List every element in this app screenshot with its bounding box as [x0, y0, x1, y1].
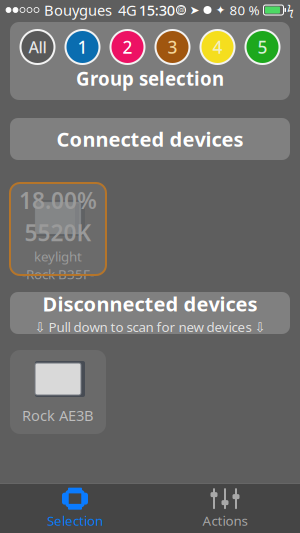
staticText: ϟ: [287, 2, 294, 18]
staticText: 18.00%: [19, 185, 97, 215]
button[interactable]: 18.00%: [10, 183, 106, 275]
button[interactable]: All: [18, 28, 56, 66]
button[interactable]: Rock AE3B: [10, 350, 106, 434]
staticText: Rock AE3B: [22, 405, 94, 425]
staticText: 4G: [118, 0, 137, 20]
staticText: 15:30: [139, 0, 175, 20]
staticText: keylight: [34, 247, 82, 265]
staticText: 2: [122, 35, 132, 58]
staticText: 5520K: [24, 217, 91, 247]
button[interactable]: 2: [108, 28, 146, 66]
button[interactable]: Actions: [150, 484, 300, 533]
staticText: 5: [257, 35, 267, 58]
button[interactable]: Connected devices: [10, 118, 290, 160]
staticText: Group selection: [76, 66, 224, 91]
staticText: Bouygues: [44, 0, 112, 20]
button[interactable]: Selection: [0, 484, 150, 533]
button[interactable]: 3: [153, 28, 191, 66]
button[interactable]: 1: [63, 28, 101, 66]
staticText: Connected devices: [56, 126, 243, 152]
staticText: 4: [212, 35, 222, 58]
button[interactable]: 5: [243, 28, 281, 66]
staticText: ➤: [189, 3, 199, 17]
staticText: @: [177, 5, 184, 15]
button[interactable]: 4: [198, 28, 236, 66]
staticText: 1: [77, 35, 87, 58]
staticText: 3: [167, 35, 177, 58]
button[interactable]: Disconnected devices: [10, 292, 290, 334]
staticText: Disconnected devices: [42, 290, 257, 317]
staticText: Selection: [47, 512, 103, 529]
staticText: Actions: [202, 512, 247, 529]
staticText: ⇩ Pull down to scan for new devices ⇩: [34, 318, 265, 336]
staticText: ✦: [215, 3, 225, 17]
staticText: All: [28, 36, 46, 58]
staticText: -Rock B35F-: [22, 265, 94, 283]
staticText: 80 %: [229, 1, 259, 19]
